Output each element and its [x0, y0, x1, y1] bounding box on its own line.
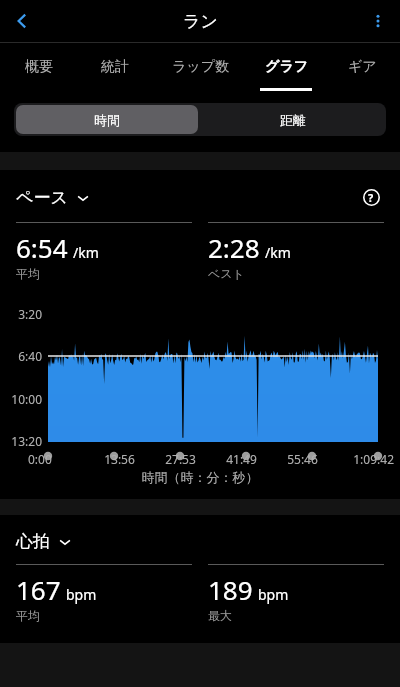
staticText: /km [265, 243, 291, 262]
staticText: ラップ数 [172, 58, 229, 76]
staticText: グラフ [265, 58, 308, 76]
button[interactable]: 距離 [200, 103, 386, 136]
staticText: 平均 [16, 608, 40, 623]
staticText: ? [368, 190, 374, 205]
staticText: 27:53 [150, 451, 211, 467]
staticText: 0:00 [28, 451, 89, 467]
staticText: 3:20 [0, 306, 42, 322]
staticText: ラン [183, 11, 218, 32]
staticText: 2:28 [208, 230, 260, 265]
staticText: /km [73, 243, 99, 262]
staticText: 10:00 [0, 391, 42, 407]
button[interactable]: ギア [324, 43, 400, 91]
staticText: 13:20 [0, 433, 42, 449]
staticText: bpm [66, 585, 97, 604]
staticText: 1:09:42 [333, 451, 394, 467]
button[interactable]: 概要 [0, 43, 77, 91]
staticText: ギア [348, 58, 377, 76]
staticText: ペース [16, 187, 68, 208]
button[interactable]: Back [0, 0, 44, 42]
staticText: 55:46 [272, 451, 333, 467]
staticText: 13:56 [89, 451, 150, 467]
button[interactable]: 時間 [16, 105, 198, 134]
staticText: 6:40 [0, 348, 42, 364]
button[interactable]: ラップ数 [153, 43, 248, 91]
staticText: 統計 [101, 58, 129, 76]
staticText: 時間 [94, 112, 120, 128]
button[interactable]: 心拍 [16, 531, 72, 552]
staticText: ベスト [208, 266, 245, 281]
button[interactable]: 統計 [77, 43, 153, 91]
button[interactable]: Help [358, 184, 384, 210]
button[interactable]: ペース [16, 187, 90, 208]
staticText: 距離 [280, 112, 306, 128]
staticText: 概要 [25, 58, 53, 76]
staticText: 時間（時：分：秒） [0, 469, 400, 485]
staticText: 167 [16, 572, 61, 607]
button[interactable]: グラフ [248, 43, 324, 91]
staticText: 189 [208, 572, 253, 607]
staticText: 41:49 [211, 451, 272, 467]
button[interactable]: More options [356, 0, 400, 42]
staticText: 心拍 [16, 531, 50, 552]
staticText: 6:54 [16, 230, 68, 265]
staticText: 最大 [208, 608, 232, 623]
staticText: bpm [258, 585, 289, 604]
staticText: 平均 [16, 266, 40, 281]
